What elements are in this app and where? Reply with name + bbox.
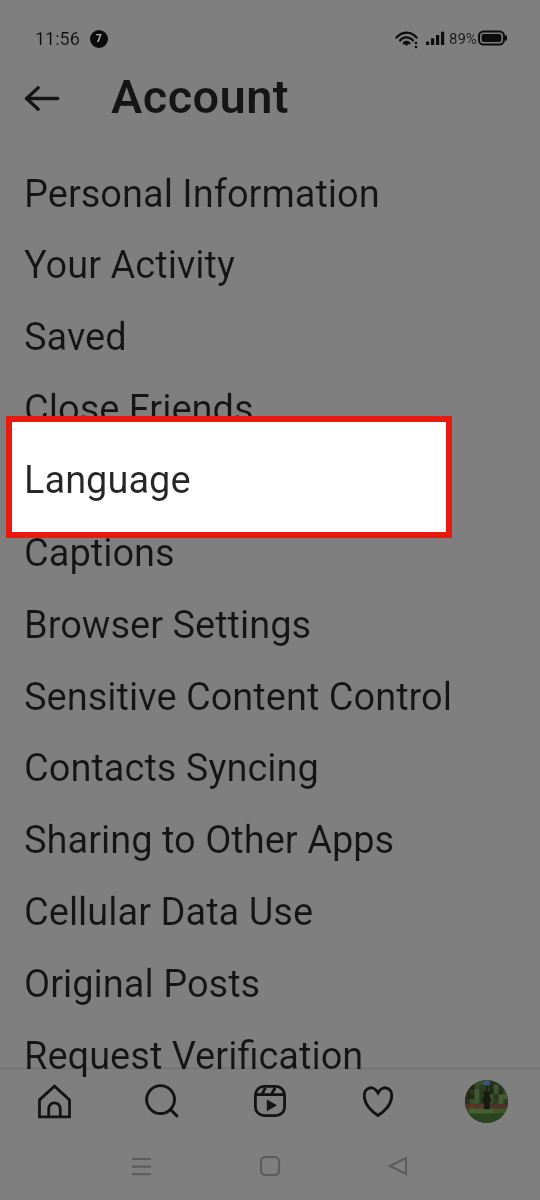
button[interactable]: Request Verification <box>0 1020 540 1092</box>
button[interactable]: Browser Settings <box>0 589 540 661</box>
staticText: Captions <box>24 531 175 576</box>
staticText: 11:56 <box>35 28 80 49</box>
staticText: 7 <box>96 33 102 45</box>
button[interactable]: Home <box>26 1073 82 1129</box>
button[interactable]: Close Friends <box>0 373 540 445</box>
staticText: Request Verification <box>24 1034 364 1079</box>
staticText: Your Activity <box>24 243 235 288</box>
button[interactable]: Saved <box>0 301 540 373</box>
staticText: Sensitive Content Control <box>24 675 453 720</box>
staticText: Account <box>111 69 290 124</box>
staticText: Browser Settings <box>24 603 312 648</box>
staticText: Language <box>24 459 191 504</box>
button[interactable]: Captions <box>0 517 540 589</box>
button[interactable]: Cellular Data Use <box>0 876 540 948</box>
staticText: Cellular Data Use <box>24 890 314 935</box>
button[interactable]: Sharing to Other Apps <box>0 804 540 876</box>
button[interactable]: Original Posts <box>0 948 540 1020</box>
button[interactable]: Language <box>12 422 446 532</box>
staticText: Saved <box>24 315 127 360</box>
button[interactable]: Back <box>374 1142 422 1190</box>
button[interactable]: Search <box>134 1073 190 1129</box>
button[interactable]: Back <box>11 70 69 128</box>
button[interactable]: Language <box>0 445 540 517</box>
button[interactable]: Reels <box>242 1073 298 1129</box>
staticText: Contacts Syncing <box>24 746 319 791</box>
button[interactable]: Recents <box>117 1142 165 1190</box>
staticText: 89% <box>449 30 477 48</box>
staticText: Sharing to Other Apps <box>24 818 395 863</box>
button[interactable]: Contacts Syncing <box>0 732 540 804</box>
button[interactable]: Home <box>246 1142 294 1190</box>
staticText: Personal Information <box>24 172 380 217</box>
button[interactable]: Your Activity <box>0 229 540 301</box>
staticText: Original Posts <box>24 962 261 1007</box>
button[interactable]: Activity <box>350 1073 406 1129</box>
staticText: Close Friends <box>24 387 254 432</box>
button[interactable]: Sensitive Content Control <box>0 661 540 733</box>
button[interactable]: Profile <box>458 1073 514 1129</box>
button[interactable]: Personal Information <box>0 158 540 230</box>
staticText: Language <box>24 458 191 503</box>
